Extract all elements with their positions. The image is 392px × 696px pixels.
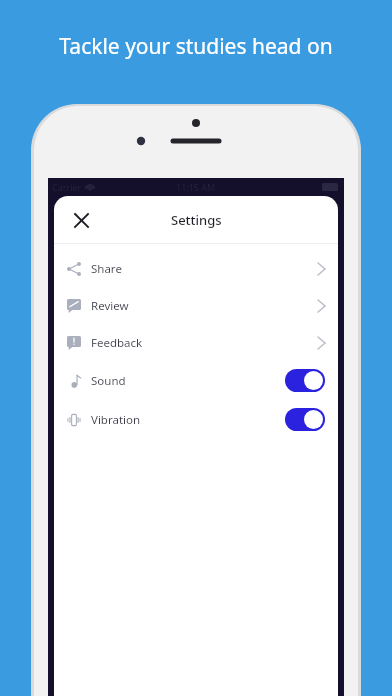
staticText: Feedback [91,335,143,351]
staticText: 11:15 AM [176,181,216,193]
staticText: Settings [171,211,222,229]
staticText: Tackle your studies head on [59,32,333,61]
staticText: Sound [91,373,126,389]
staticText: Share [91,261,122,277]
staticText: Vibration [91,412,141,428]
staticText: Carrier [52,181,82,193]
button[interactable]: Review [54,287,338,324]
button[interactable]: Share [54,250,338,287]
button[interactable]: Close [66,205,96,235]
button[interactable]: Vibration [54,400,338,439]
button[interactable]: Feedback [54,324,338,361]
staticText: Review [91,298,129,314]
button[interactable]: Sound [54,361,338,400]
